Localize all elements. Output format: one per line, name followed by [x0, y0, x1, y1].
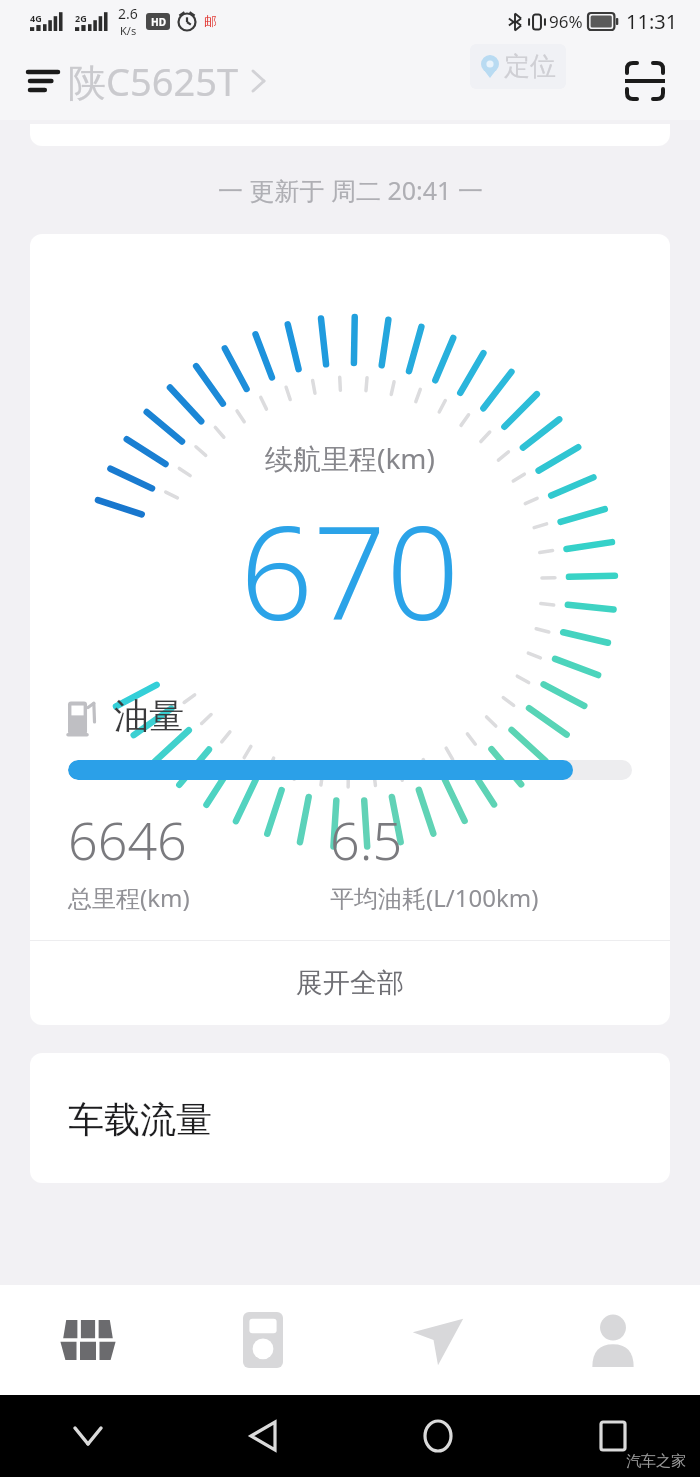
staticText: 汽车之家	[626, 1452, 686, 1471]
staticText: 车载流量	[68, 1097, 212, 1142]
staticText: 定位	[504, 50, 556, 83]
button[interactable]: 定位	[470, 44, 566, 89]
staticText: 陕C5625T	[68, 55, 239, 107]
staticText: 平均油耗(L/100km)	[330, 881, 539, 914]
staticText: 总里程(km)	[68, 881, 190, 914]
button[interactable]: 展开全部	[30, 941, 670, 1025]
staticText: 2G	[75, 12, 87, 24]
staticText: 96%	[549, 10, 583, 33]
staticText: 6.5	[330, 804, 403, 875]
staticText: 11:31	[626, 8, 678, 35]
button[interactable]: Back	[175, 1395, 350, 1477]
staticText: 展开全部	[296, 966, 404, 1000]
staticText: 670	[240, 483, 460, 657]
staticText: 4G	[30, 12, 42, 24]
button[interactable]: Recent apps	[525, 1395, 700, 1477]
staticText: 6646	[68, 804, 187, 875]
staticText: K/s	[120, 23, 137, 38]
button[interactable]: Hide keyboard	[0, 1395, 175, 1477]
button[interactable]: Home	[350, 1395, 525, 1477]
button[interactable]: Menu	[20, 58, 66, 104]
button[interactable]: 陕C5625T	[68, 55, 267, 107]
staticText: 邮	[204, 13, 217, 29]
staticText: 续航里程(km)	[265, 439, 435, 477]
staticText: 2.6	[118, 4, 138, 23]
button[interactable]: Car	[0, 1285, 175, 1395]
button[interactable]: Scan	[618, 54, 672, 108]
button[interactable]: 车载流量	[30, 1053, 670, 1183]
staticText: 油量	[114, 694, 184, 738]
staticText: 一 更新于 周二 20:41 一	[218, 173, 483, 207]
staticText: HD	[151, 15, 166, 29]
button[interactable]: Profile	[525, 1285, 700, 1395]
button[interactable]: Media	[175, 1285, 350, 1395]
button[interactable]: Navigation	[350, 1285, 525, 1395]
